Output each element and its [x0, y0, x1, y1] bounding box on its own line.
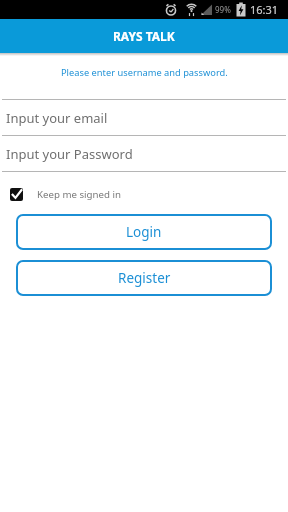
staticText: Please enter username and password.: [61, 66, 228, 78]
button[interactable]: Input your Password: [0, 136, 288, 171]
button[interactable]: Register: [16, 260, 272, 296]
staticText: Keep me signed in: [37, 188, 121, 201]
staticText: Input your email: [6, 109, 108, 127]
button[interactable]: Input your email: [0, 100, 288, 135]
button[interactable]: Keep me signed in: [0, 188, 288, 201]
staticText: Login: [126, 223, 162, 241]
button[interactable]: Login: [16, 214, 272, 250]
staticText: RAYS TALK: [113, 28, 175, 44]
staticText: Register: [118, 269, 171, 287]
staticText: 99%: [215, 4, 231, 15]
staticText: 16:31: [250, 2, 279, 17]
staticText: Input your Password: [6, 145, 133, 163]
